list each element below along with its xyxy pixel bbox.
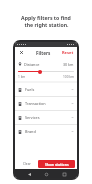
staticText: the right station. bbox=[24, 21, 69, 28]
button[interactable]: Close bbox=[18, 49, 25, 56]
staticText: Distance bbox=[24, 62, 40, 67]
staticText: Fuels bbox=[25, 87, 35, 92]
staticText: Reset bbox=[62, 50, 74, 55]
button[interactable]: Reset bbox=[62, 50, 74, 55]
staticText: Clear bbox=[23, 162, 31, 166]
staticText: Services bbox=[25, 115, 40, 120]
button[interactable]: Home bbox=[42, 170, 50, 178]
button[interactable]: Show stations bbox=[38, 160, 75, 168]
button[interactable]: Clear bbox=[17, 160, 36, 168]
staticText: Filters bbox=[36, 50, 51, 56]
button[interactable]: Brand bbox=[15, 125, 77, 138]
staticText: 1 km bbox=[18, 75, 26, 79]
button[interactable]: Recents bbox=[60, 170, 68, 178]
staticText: Brand bbox=[25, 129, 36, 134]
staticText: 100 km bbox=[63, 75, 74, 79]
staticText: Show stations bbox=[45, 162, 69, 167]
staticText: 30 km bbox=[63, 62, 74, 67]
staticText: Apply filters to find bbox=[21, 14, 71, 21]
button[interactable]: Services bbox=[15, 111, 77, 124]
button[interactable] bbox=[18, 68, 74, 75]
button[interactable]: Transaction bbox=[15, 97, 77, 110]
button[interactable]: Fuels bbox=[15, 83, 77, 96]
button[interactable]: Back bbox=[25, 170, 33, 178]
staticText: Transaction bbox=[25, 101, 46, 106]
